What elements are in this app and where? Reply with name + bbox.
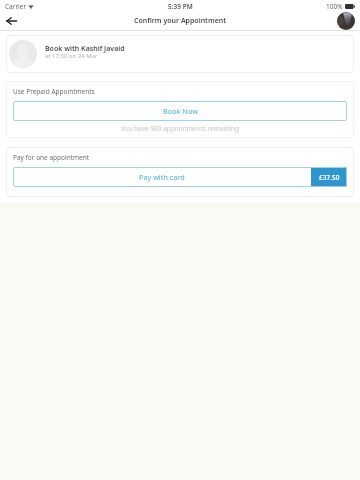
- staticText: 5:39 PM: [168, 2, 193, 11]
- staticText: Use Prepaid Appointments: [13, 87, 95, 96]
- staticText: You have 980 appointments remaining: [13, 124, 347, 133]
- staticText: Pay for one appointment: [13, 153, 90, 162]
- staticText: Carrier: [5, 2, 27, 11]
- staticText: Book with Kashif Javaid: [45, 44, 125, 54]
- staticText: £37.50: [319, 173, 340, 182]
- button[interactable]: Pay with card: [13, 167, 347, 187]
- staticText: Confirm your Appointment: [134, 16, 227, 26]
- button[interactable]: Profile: [337, 12, 355, 30]
- button[interactable]: Book Now: [13, 101, 347, 121]
- staticText: Pay with card: [139, 172, 185, 182]
- button[interactable]: Back: [1, 11, 21, 30]
- staticText: Book Now: [163, 106, 198, 116]
- staticText: at 17:50 on 24 Mar: [45, 52, 98, 60]
- staticText: 100%: [326, 2, 343, 11]
